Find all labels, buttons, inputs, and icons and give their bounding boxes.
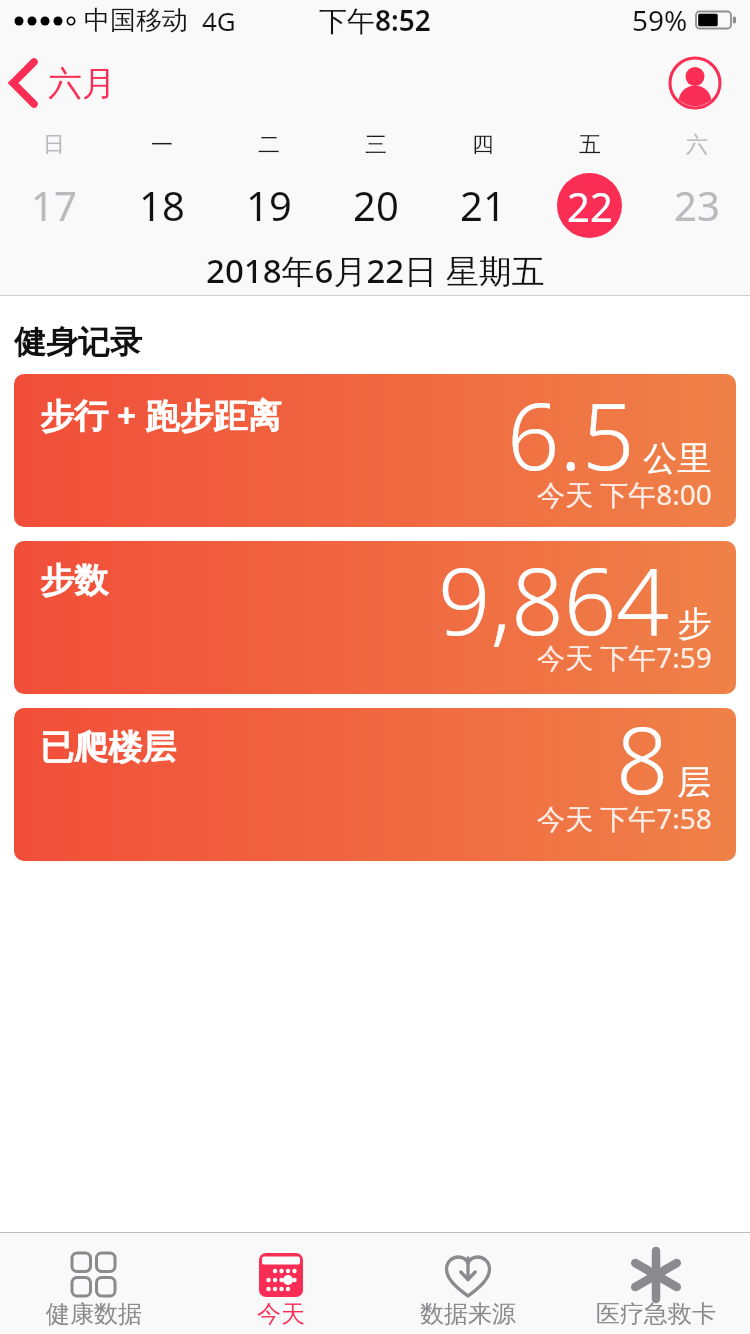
button[interactable]: 22 [536,165,643,245]
staticText: 步数 [40,559,108,602]
staticText: 中国移动 [84,4,188,37]
button[interactable]: 医疗急救卡 [562,1233,750,1334]
button[interactable] [668,56,722,110]
staticText: 数据来源 [420,1299,516,1329]
button[interactable]: 健康数据 [0,1233,187,1334]
button[interactable]: 已爬楼层 [14,708,736,861]
staticText: 18 [139,178,185,232]
staticText: 17 [31,178,77,232]
staticText: 五 [579,131,601,159]
button[interactable]: 数据来源 [374,1233,562,1334]
staticText: 三 [365,131,387,159]
staticText: 20 [353,178,399,232]
staticText: 医疗急救卡 [596,1299,716,1329]
button[interactable]: 今天 [187,1233,374,1334]
button[interactable]: 19 [215,165,322,245]
staticText: 已爬楼层 [40,726,176,769]
staticText: 59% [632,1,688,39]
button[interactable]: 20 [322,165,429,245]
staticText: 一 [151,131,173,159]
staticText: 六 [686,131,708,159]
button[interactable]: 六月 [0,59,116,107]
staticText: 今天 下午8:00 [537,475,712,513]
staticText: 今天 下午7:58 [537,799,712,837]
staticText: 日 [43,131,65,159]
staticText: 六月 [48,62,116,105]
staticText: 23 [674,178,720,232]
staticText: 19 [246,178,292,232]
staticText: 2018年6月22日 星期五 [206,248,545,293]
staticText: 下午8:52 [319,1,431,39]
staticText: 步行 + 跑步距离 [40,392,282,438]
staticText: 9,864 步 [438,541,712,662]
button[interactable]: 23 [643,165,750,245]
staticText: 今天 [257,1299,305,1329]
button[interactable]: 17 [0,165,108,245]
button[interactable]: 21 [429,165,536,245]
staticText: 健康数据 [46,1299,142,1329]
staticText: 21 [460,178,506,232]
staticText: 4G [202,3,236,38]
staticText: 8 层 [616,708,712,821]
staticText: 二 [258,131,280,159]
staticText: 健身记录 [14,322,142,362]
staticText: 6.5 公里 [507,374,712,497]
staticText: 今天 下午7:59 [537,638,712,676]
button[interactable]: 18 [108,165,215,245]
staticText: 四 [472,131,494,159]
button[interactable]: 步数 [14,541,736,694]
button[interactable]: 步行 + 跑步距离 [14,374,736,527]
staticText: 22 [567,179,613,233]
